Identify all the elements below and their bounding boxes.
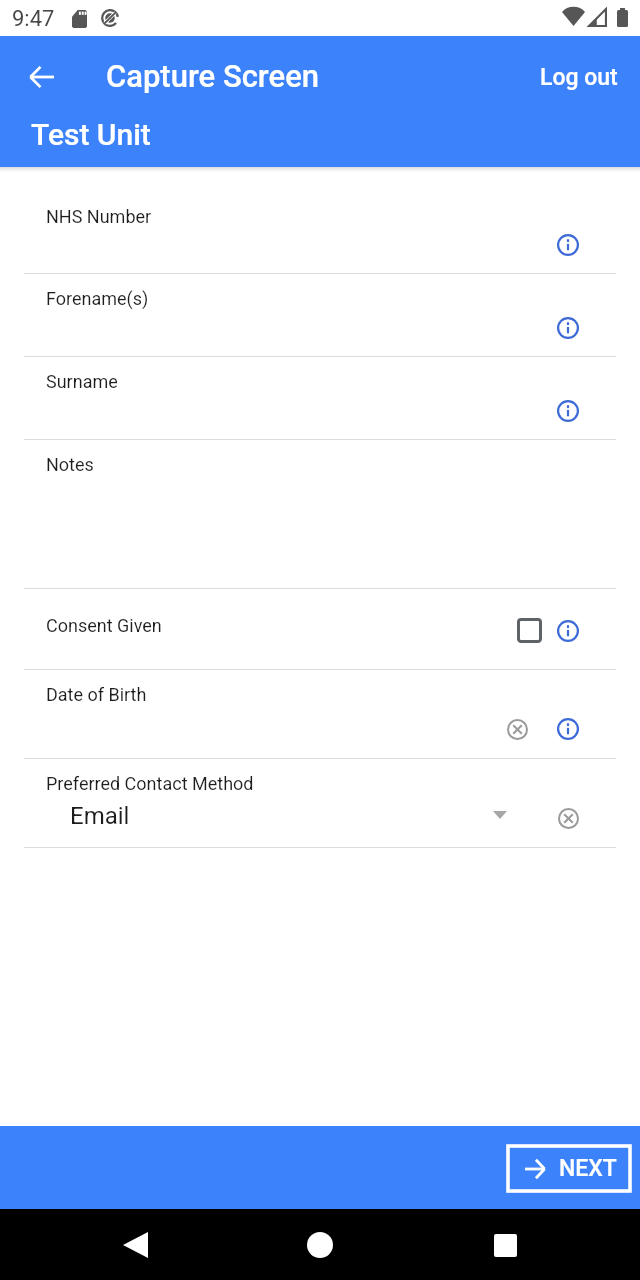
button[interactable]: Log out [527, 55, 631, 99]
staticText: Capture Screen [106, 58, 320, 94]
button[interactable]: Consent Given checkbox [512, 613, 546, 647]
button[interactable]: Notes [0, 440, 640, 589]
button[interactable]: More information [551, 228, 585, 262]
button[interactable]: NHS Number [0, 192, 640, 274]
button[interactable]: More information [551, 614, 585, 648]
button[interactable]: NEXT [508, 1146, 630, 1191]
staticText: NEXT [559, 1155, 617, 1182]
button[interactable]: Surname [0, 357, 640, 440]
button[interactable]: Date of Birth [0, 670, 640, 759]
staticText: Notes [46, 454, 94, 475]
staticText: 9:47 [12, 6, 55, 32]
button[interactable]: Preferred Contact Method [0, 759, 640, 848]
button[interactable]: Back [17, 53, 65, 101]
staticText: Surname [46, 371, 118, 392]
button[interactable]: Show options [485, 800, 515, 830]
button[interactable]: More information [551, 712, 585, 746]
button[interactable]: Forename(s) [0, 274, 640, 357]
staticText: Log out [540, 64, 618, 91]
staticText: Email [70, 802, 130, 830]
staticText: Date of Birth [46, 684, 147, 705]
staticText: Consent Given [46, 615, 162, 636]
button[interactable]: Recent apps [485, 1225, 525, 1265]
staticText: Forename(s) [46, 288, 149, 309]
button[interactable]: Clear [500, 712, 534, 746]
button[interactable]: Home [300, 1225, 340, 1265]
button[interactable]: Consent Given [0, 589, 640, 670]
staticText: Preferred Contact Method [46, 773, 254, 794]
button[interactable]: More information [551, 394, 585, 428]
button[interactable]: Clear [551, 801, 585, 835]
button[interactable]: More information [551, 311, 585, 345]
staticText: NHS Number [46, 206, 152, 227]
staticText: Test Unit [31, 117, 151, 152]
button[interactable]: Back [115, 1225, 155, 1265]
